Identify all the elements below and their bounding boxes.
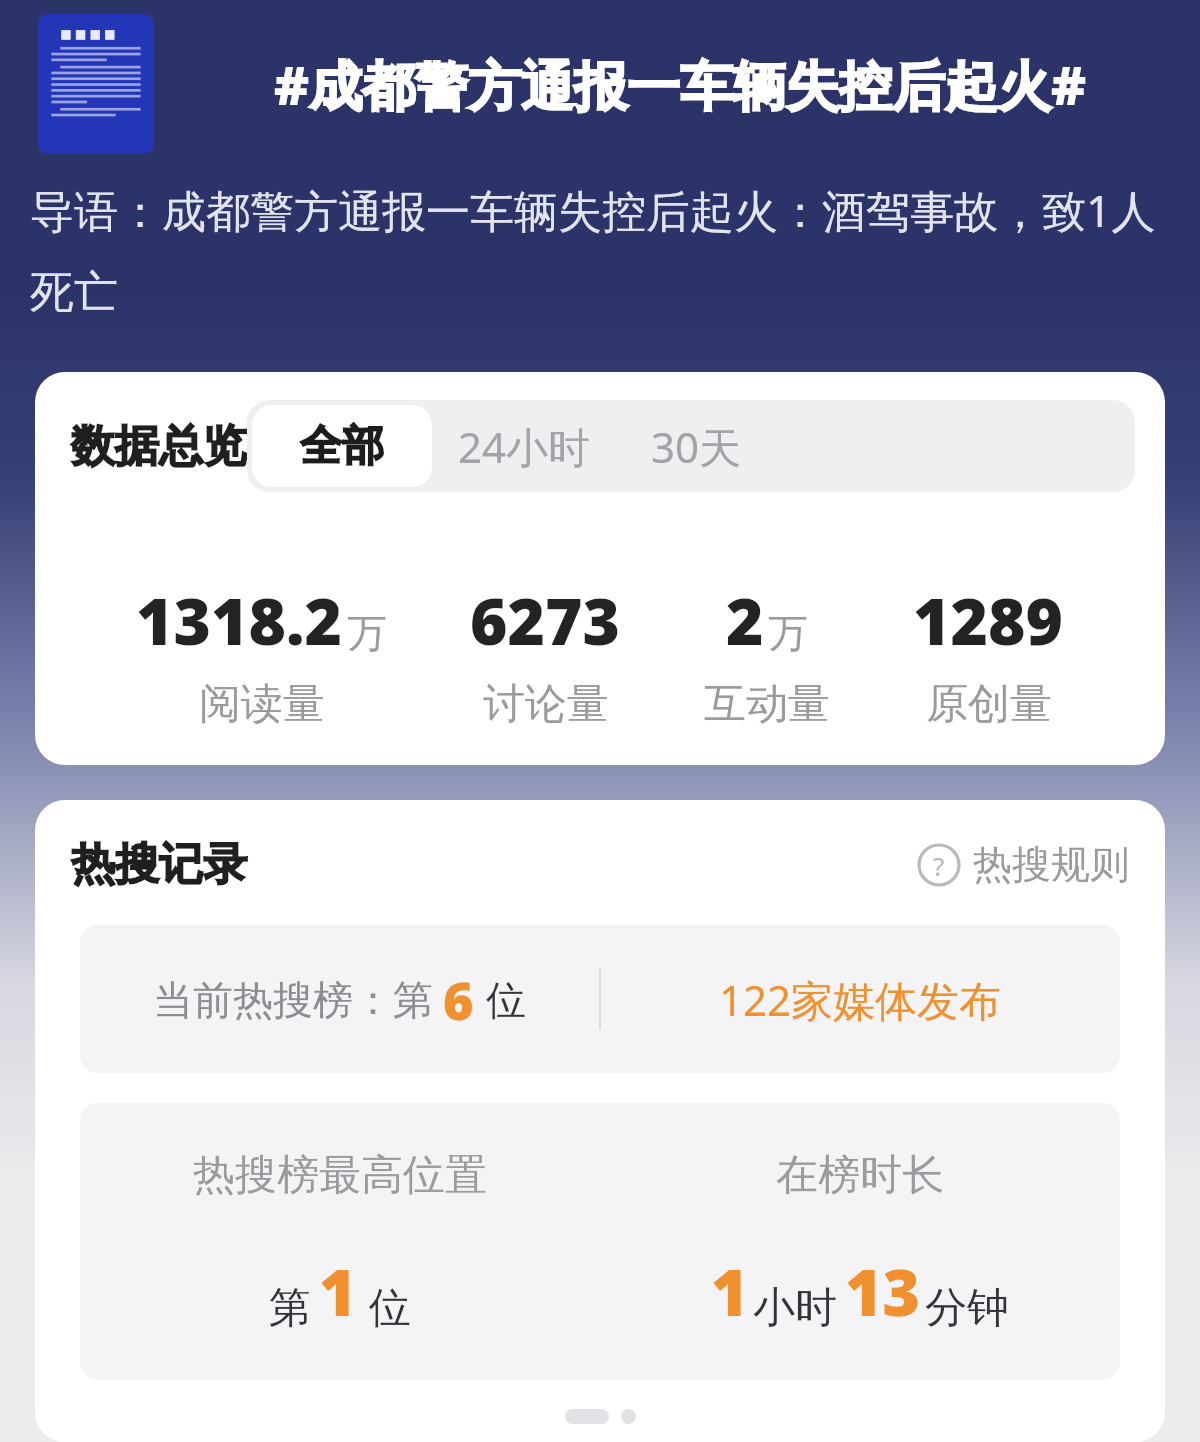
staticText: 原创量 (926, 678, 1052, 731)
button[interactable]: 热搜榜最高位置 (80, 1103, 1120, 1380)
staticText: 1318.2 (136, 577, 343, 664)
staticText: 位 (369, 1282, 411, 1335)
button[interactable]: 警情通报图片 (38, 14, 154, 154)
staticText: 小时 (753, 1282, 837, 1335)
staticText: 万 (347, 608, 387, 658)
staticText: 热搜榜最高位置 (193, 1149, 487, 1202)
button[interactable]: 24小时 (437, 400, 612, 492)
staticText: 24小时 (458, 418, 591, 475)
staticText: 全部 (300, 420, 384, 473)
button[interactable]: 全部 (252, 405, 432, 487)
staticText: #成都警方通报一车辆失控后起火# (274, 48, 1087, 120)
staticText: 在榜时长 (776, 1149, 944, 1202)
button[interactable]: 当前热搜榜：第 (80, 925, 1120, 1073)
staticText: 6273 (470, 577, 621, 664)
staticText: 阅读量 (199, 678, 325, 731)
staticText: 第 (269, 1282, 311, 1335)
button[interactable]: 30天 (612, 400, 780, 492)
staticText: 1289 (913, 577, 1064, 664)
staticText: 数据总览 (71, 419, 247, 474)
staticText: ? (933, 848, 945, 883)
staticText: 导语：成都警方通报一车辆失控后起火：酒驾事故，致1人死亡 (30, 180, 1170, 320)
staticText: 1 (319, 1248, 357, 1335)
staticText: 互动量 (704, 678, 830, 731)
other: 热搜规则说明 (917, 843, 961, 887)
button[interactable]: 热搜规则说明 (913, 834, 1133, 895)
staticText: 30天 (651, 418, 742, 475)
staticText: 分钟 (925, 1282, 1009, 1335)
staticText: 2 (726, 577, 764, 664)
staticText: 热搜记录 (71, 837, 247, 892)
staticText: 万 (768, 608, 808, 658)
staticText: 位 (486, 975, 526, 1025)
staticText: 6 (443, 964, 474, 1035)
staticText: 当前热搜榜：第 (153, 975, 433, 1025)
staticText: 热搜规则 (973, 840, 1129, 889)
staticText: 122家媒体发布 (719, 971, 1002, 1028)
staticText: 1 (711, 1248, 749, 1335)
staticText: 13 (845, 1248, 921, 1335)
staticText: 讨论量 (483, 678, 609, 731)
